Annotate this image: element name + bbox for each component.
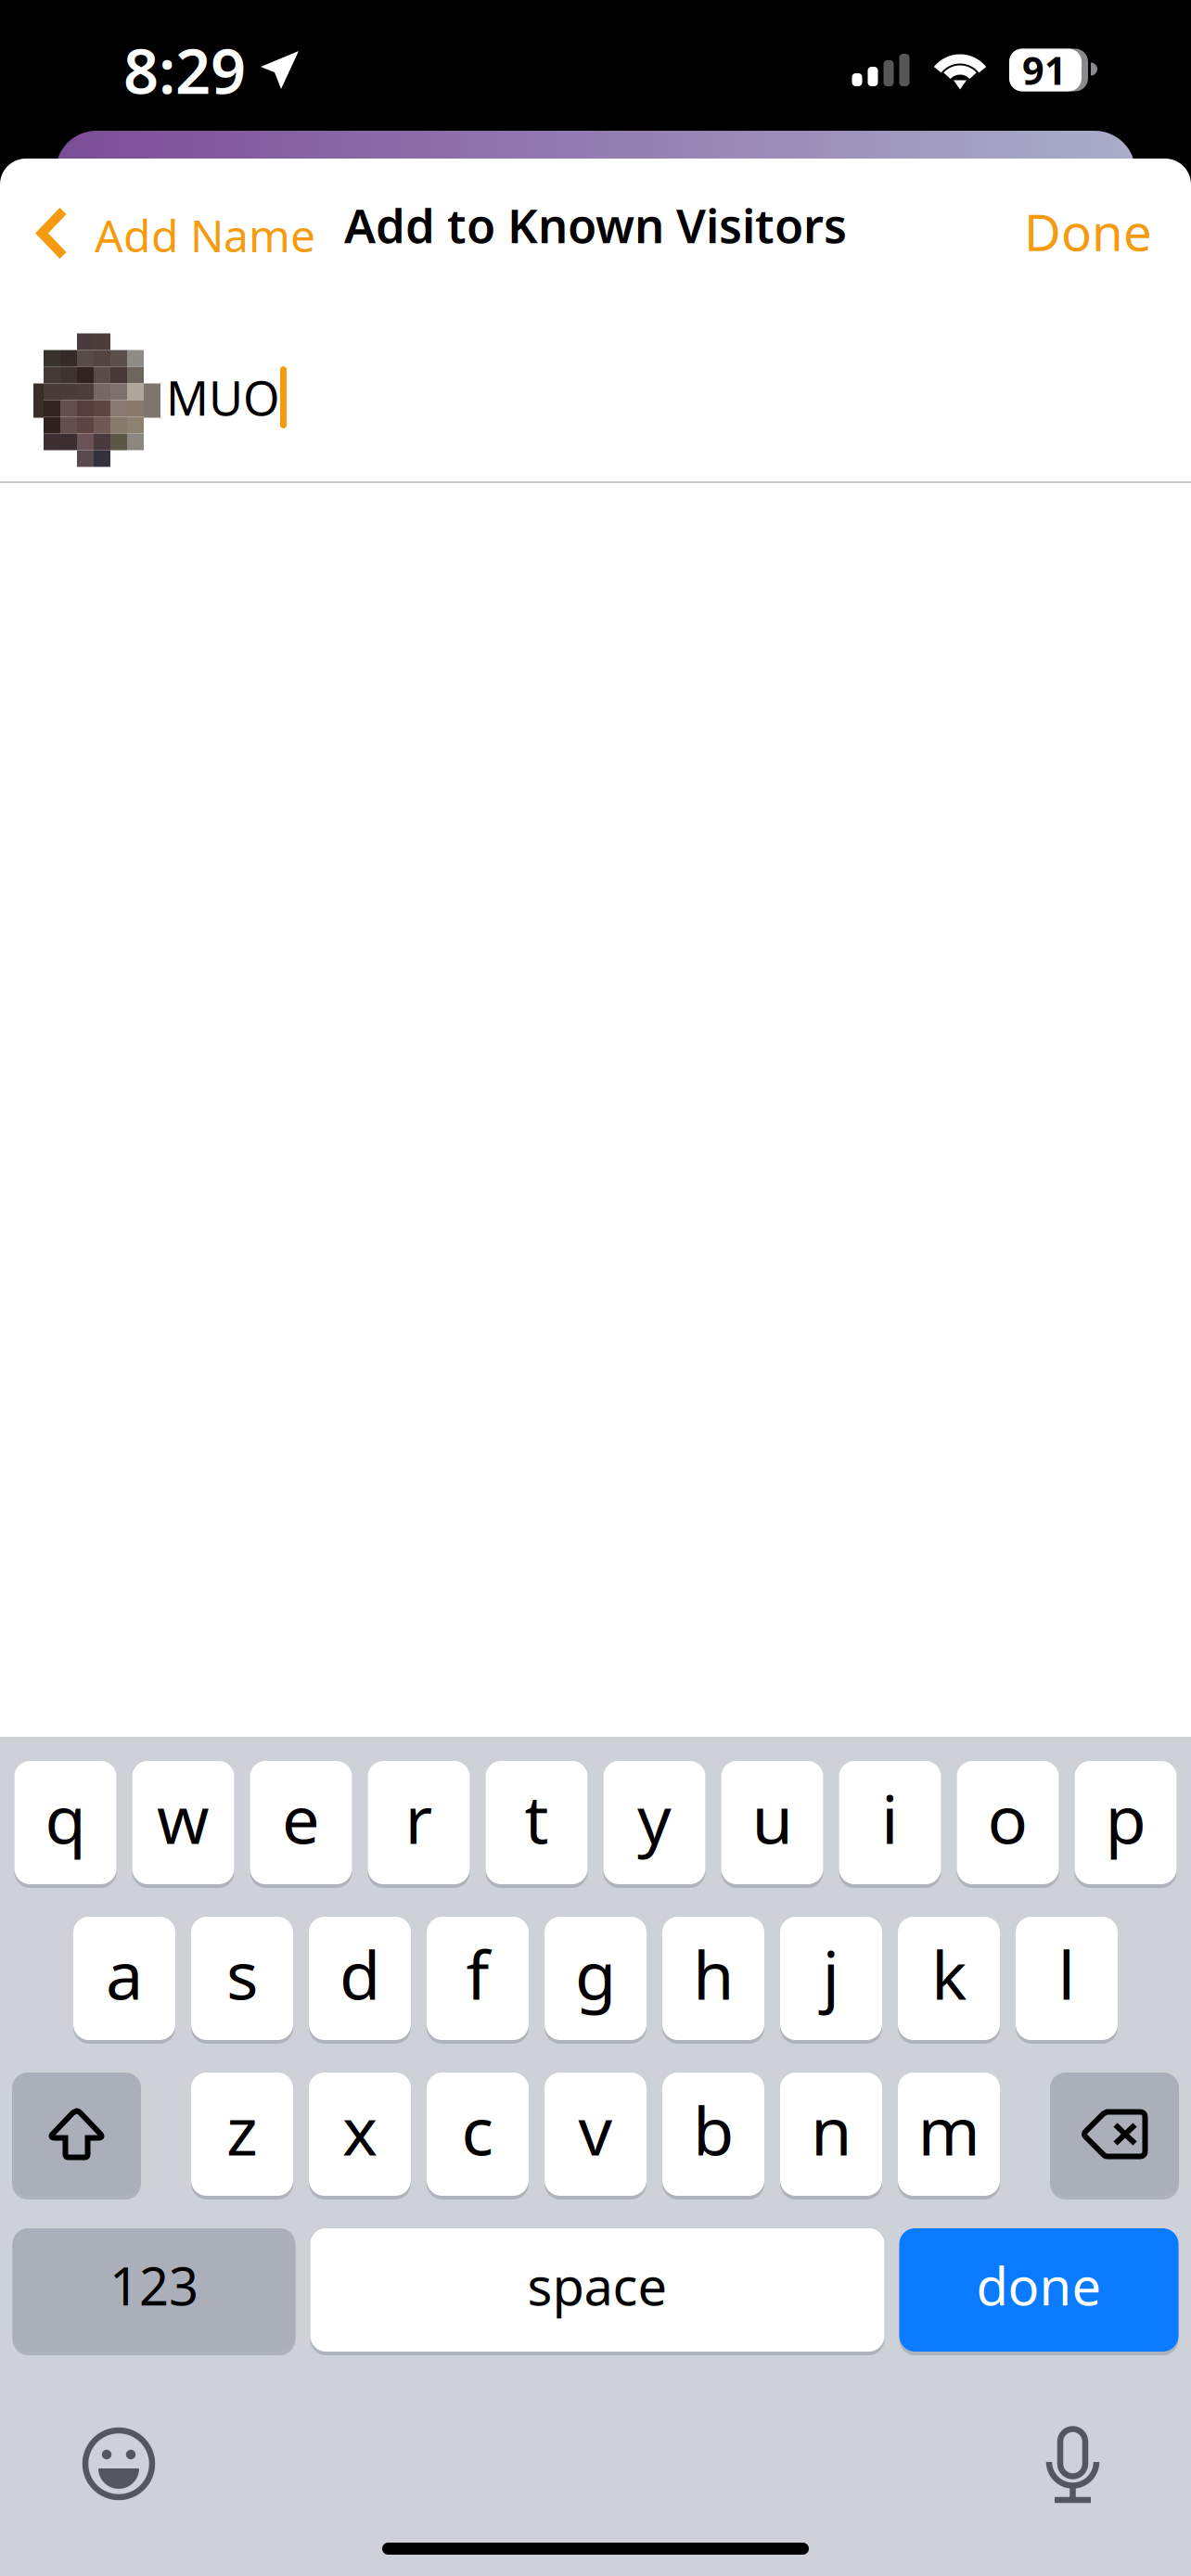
staticText: v <box>578 2085 613 2174</box>
button[interactable]: j <box>780 1915 882 2042</box>
staticText: t <box>525 1774 549 1862</box>
staticText: q <box>45 1774 86 1862</box>
staticText: MUO <box>166 366 280 429</box>
staticText: c <box>461 2085 494 2174</box>
staticText: done <box>976 2251 1101 2320</box>
button[interactable]: s <box>191 1915 293 2042</box>
button[interactable]: 123 <box>13 2226 295 2353</box>
staticText: y <box>637 1774 672 1862</box>
staticText: o <box>987 1774 1028 1862</box>
button[interactable]: p <box>1075 1759 1177 1886</box>
button[interactable]: Emoji keyboard <box>69 2414 169 2514</box>
staticText: b <box>693 2085 734 2174</box>
staticText: Add to Known Visitors <box>344 194 847 256</box>
staticText: s <box>226 1929 258 2018</box>
button[interactable]: d <box>309 1915 411 2042</box>
button[interactable]: q <box>14 1759 116 1886</box>
button[interactable]: i <box>839 1759 941 1886</box>
staticText: d <box>339 1929 380 2018</box>
button[interactable]: a <box>73 1915 175 2042</box>
button[interactable]: w <box>132 1759 234 1886</box>
staticText: space <box>527 2251 667 2320</box>
staticText: f <box>466 1929 489 2018</box>
staticText: l <box>1058 1929 1076 2018</box>
button[interactable]: v <box>544 2071 647 2198</box>
button[interactable]: g <box>544 1915 647 2042</box>
staticText: h <box>693 1929 734 2018</box>
staticText: a <box>106 1929 143 2018</box>
staticText: p <box>1105 1774 1146 1862</box>
button[interactable]: t <box>486 1759 588 1886</box>
staticText: j <box>822 1929 840 2018</box>
button[interactable]: l <box>1016 1915 1118 2042</box>
button[interactable]: h <box>662 1915 764 2042</box>
button[interactable]: space <box>310 2226 884 2353</box>
button[interactable]: c <box>427 2071 529 2198</box>
button[interactable]: m <box>898 2071 1000 2198</box>
button[interactable]: k <box>898 1915 1000 2042</box>
button[interactable]: o <box>957 1759 1059 1886</box>
button[interactable]: done <box>899 2226 1178 2353</box>
staticText: 8:29 <box>123 29 246 111</box>
button[interactable]: u <box>721 1759 823 1886</box>
staticText: r <box>405 1774 433 1862</box>
button[interactable]: n <box>780 2071 882 2198</box>
button[interactable]: Delete <box>1050 2071 1179 2198</box>
button[interactable]: Dictation <box>1033 2411 1113 2517</box>
button[interactable]: z <box>191 2071 293 2198</box>
button[interactable]: Done <box>998 175 1191 275</box>
button[interactable]: x <box>309 2071 411 2198</box>
staticText: Done <box>1024 198 1152 265</box>
staticText: Add Name <box>95 205 315 265</box>
staticText: m <box>918 2085 980 2174</box>
button[interactable]: r <box>368 1759 470 1886</box>
staticText: e <box>282 1774 320 1862</box>
button[interactable]: y <box>603 1759 705 1886</box>
staticText: u <box>752 1774 793 1862</box>
staticText: g <box>575 1929 616 2018</box>
button[interactable]: Add Name <box>0 179 332 271</box>
staticText: w <box>157 1774 210 1862</box>
button[interactable]: b <box>662 2071 764 2198</box>
staticText: z <box>226 2085 258 2174</box>
staticText: 123 <box>109 2251 198 2320</box>
staticText: i <box>881 1774 899 1862</box>
staticText: n <box>811 2085 852 2174</box>
button[interactable]: Shift <box>12 2071 141 2198</box>
staticText: 91 <box>1022 45 1067 96</box>
button[interactable]: f <box>427 1915 529 2042</box>
staticText: x <box>342 2085 378 2174</box>
staticText: k <box>931 1929 967 2018</box>
button[interactable]: e <box>250 1759 352 1886</box>
